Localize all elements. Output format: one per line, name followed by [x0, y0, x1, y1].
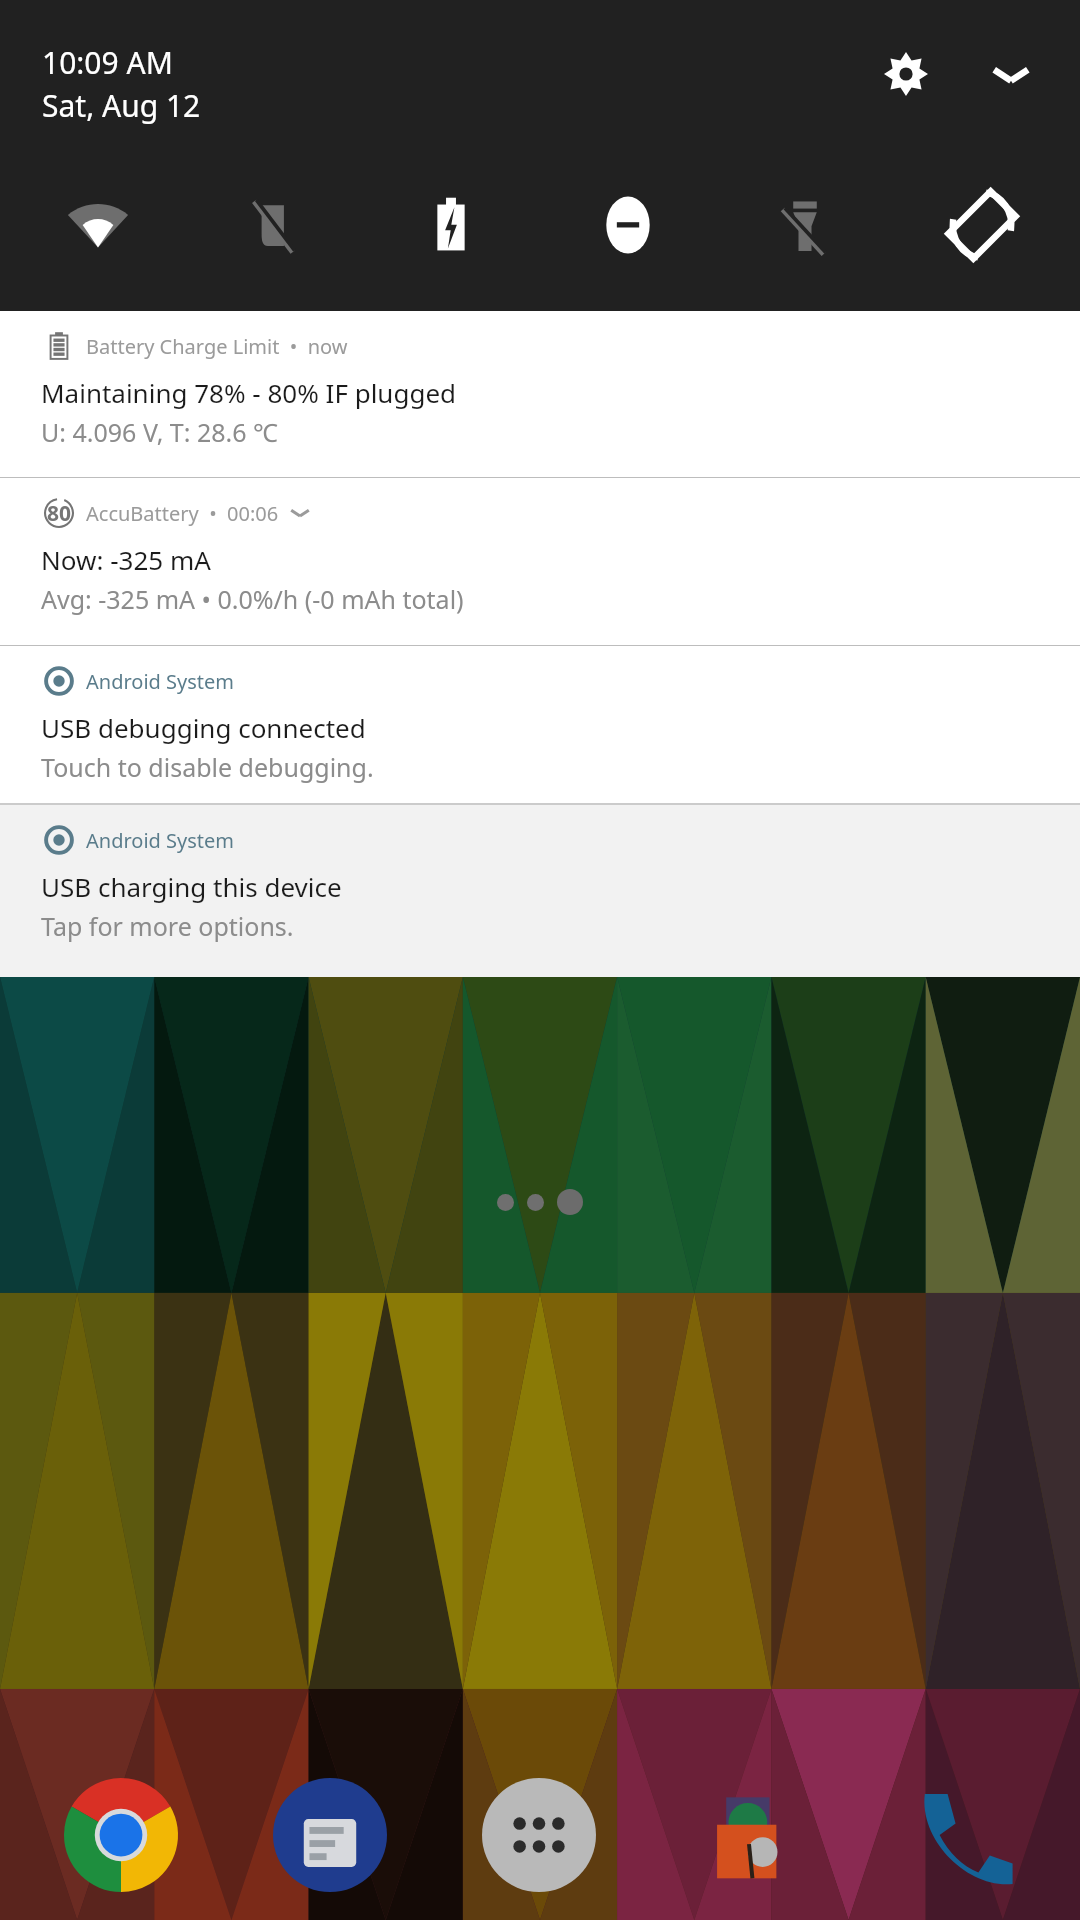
- staticText: Avg: -325 mA • 0.0%/h (-0 mAh total): [41, 582, 464, 616]
- staticText: Now: -325 mA: [41, 542, 211, 577]
- button[interactable]: Battery Charge Limit • now: [0, 311, 1080, 477]
- button[interactable]: Android System: [0, 805, 1080, 977]
- button[interactable]: Wi-Fi: [10, 197, 186, 253]
- staticText: USB debugging connected: [41, 710, 366, 745]
- button[interactable]: Expand quick settings: [980, 44, 1042, 106]
- staticText: Android System: [86, 827, 235, 854]
- staticText: Touch to disable debugging.: [41, 750, 374, 784]
- button[interactable]: Mobile data off: [186, 194, 362, 256]
- staticText: Battery Charge Limit • now: [86, 333, 348, 360]
- button[interactable]: Do not disturb: [539, 194, 716, 256]
- staticText: USB charging this device: [41, 869, 342, 904]
- button[interactable]: Phone: [854, 1778, 1064, 1892]
- button[interactable]: Flashlight off: [716, 194, 893, 256]
- staticText: 80: [47, 499, 72, 528]
- staticText: AccuBattery • 00:06: [86, 500, 279, 527]
- button[interactable]: Chrome: [16, 1778, 225, 1892]
- button[interactable]: Settings: [874, 42, 938, 106]
- button[interactable]: Auto rotate: [893, 191, 1070, 259]
- staticText: Android System: [86, 668, 235, 695]
- button[interactable]: 80: [0, 478, 1080, 645]
- button[interactable]: Messages: [225, 1778, 434, 1892]
- staticText: Sat, Aug 12: [42, 85, 201, 126]
- button[interactable]: Battery charging: [362, 194, 539, 256]
- button[interactable]: Photos: [644, 1778, 854, 1892]
- button[interactable]: All apps: [434, 1778, 644, 1892]
- staticText: Tap for more options.: [41, 909, 294, 943]
- button[interactable]: Android System: [0, 646, 1080, 803]
- staticText: 10:09 AM: [42, 42, 173, 83]
- staticText: U: 4.096 V, T: 28.6 ℃: [41, 415, 278, 449]
- staticText: Maintaining 78% - 80% IF plugged: [41, 375, 457, 410]
